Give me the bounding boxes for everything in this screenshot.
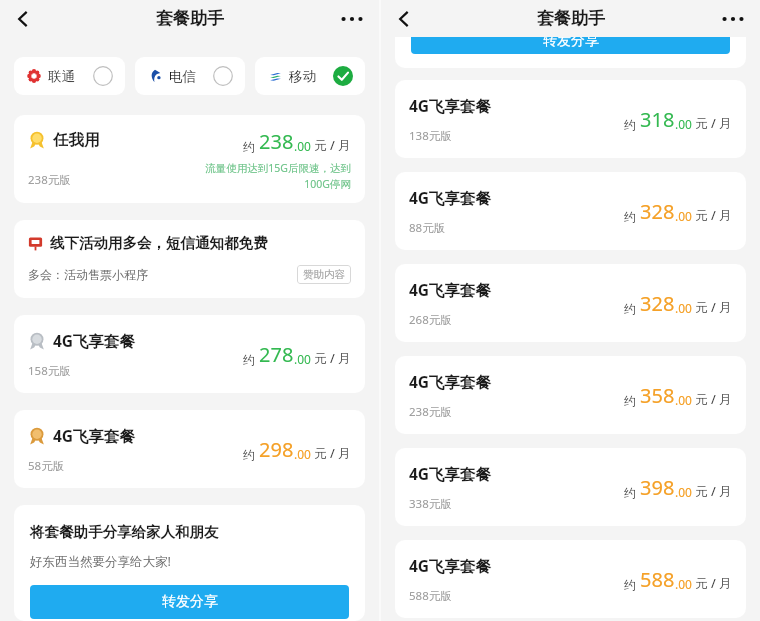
staticText: 358: [640, 382, 675, 409]
staticText: 流量使用达到15G后限速，达到100G停网: [193, 161, 351, 191]
staticText: 4G飞享套餐: [409, 555, 492, 576]
staticText: 任我用: [53, 130, 100, 150]
staticText: .00: [675, 484, 692, 500]
button[interactable]: 移动: [255, 57, 365, 95]
button[interactable]: 线下活动用多会，短信通知都免费: [14, 220, 365, 298]
button[interactable]: More options: [716, 2, 750, 36]
staticText: 约: [624, 116, 640, 132]
staticText: 套餐助手: [156, 8, 224, 29]
staticText: 88元版: [409, 220, 446, 236]
staticText: 约: [243, 138, 259, 154]
staticText: 328: [640, 198, 675, 225]
staticText: 移动: [289, 68, 316, 85]
button[interactable]: Back: [8, 4, 38, 34]
staticText: 好东西当然要分享给大家!: [30, 553, 171, 570]
staticText: 约: [624, 576, 640, 592]
staticText: 元 / 月: [692, 299, 732, 316]
staticText: 元 / 月: [692, 483, 732, 500]
staticText: 约: [243, 351, 259, 367]
staticText: 电信: [169, 68, 196, 85]
staticText: 238元版: [409, 404, 452, 420]
staticText: 4G飞享套餐: [409, 463, 492, 484]
staticText: .00: [675, 208, 692, 224]
button[interactable]: 4G飞享套餐: [395, 356, 746, 434]
staticText: 4G飞享套餐: [53, 330, 136, 351]
staticText: 赞助内容: [303, 268, 345, 281]
staticText: .00: [675, 300, 692, 316]
staticText: 元 / 月: [311, 137, 351, 154]
staticText: 元 / 月: [311, 445, 351, 462]
button[interactable]: More options: [335, 2, 369, 36]
button[interactable]: 赞助内容: [297, 265, 351, 284]
button[interactable]: 转发分享: [411, 37, 730, 54]
staticText: 元 / 月: [692, 575, 732, 592]
staticText: 298: [259, 436, 294, 463]
button[interactable]: 任我用: [14, 115, 365, 203]
staticText: .00: [675, 116, 692, 132]
button[interactable]: 4G飞享套餐: [395, 80, 746, 158]
staticText: 268元版: [409, 312, 452, 328]
staticText: 4G飞享套餐: [409, 95, 492, 116]
button[interactable]: 4G飞享套餐: [14, 315, 365, 393]
staticText: 588元版: [409, 588, 452, 604]
button[interactable]: 4G飞享套餐: [395, 540, 746, 618]
button[interactable]: 4G飞享套餐: [14, 410, 365, 488]
staticText: 328: [640, 290, 675, 317]
staticText: 338元版: [409, 496, 452, 512]
staticText: 4G飞享套餐: [409, 279, 492, 300]
staticText: 将套餐助手分享给家人和朋友: [30, 523, 219, 541]
staticText: 元 / 月: [692, 115, 732, 132]
staticText: 约: [624, 208, 640, 224]
button[interactable]: 联通: [14, 57, 125, 95]
staticText: 约: [624, 300, 640, 316]
staticText: 套餐助手: [537, 8, 605, 29]
button[interactable]: 4G飞享套餐: [395, 264, 746, 342]
staticText: 约: [624, 484, 640, 500]
staticText: .00: [294, 351, 311, 367]
staticText: 元 / 月: [692, 391, 732, 408]
staticText: .00: [294, 446, 311, 462]
staticText: 约: [243, 446, 259, 462]
staticText: 4G飞享套餐: [53, 425, 136, 446]
staticText: 4G飞享套餐: [409, 371, 492, 392]
staticText: 318: [640, 106, 675, 133]
staticText: 4G飞享套餐: [409, 187, 492, 208]
staticText: 398: [640, 474, 675, 501]
staticText: .00: [675, 576, 692, 592]
staticText: 158元版: [28, 363, 71, 379]
button[interactable]: 电信: [135, 57, 245, 95]
staticText: 238: [259, 128, 294, 155]
staticText: 元 / 月: [692, 207, 732, 224]
button[interactable]: 转发分享: [30, 585, 349, 619]
staticText: 转发分享: [543, 37, 599, 50]
button[interactable]: 4G飞享套餐: [395, 172, 746, 250]
staticText: 联通: [48, 68, 75, 85]
staticText: .00: [675, 392, 692, 408]
staticText: 转发分享: [162, 593, 218, 611]
staticText: .00: [294, 138, 311, 154]
staticText: 238元版: [28, 172, 71, 188]
staticText: 58元版: [28, 458, 65, 474]
button[interactable]: 4G飞享套餐: [395, 448, 746, 526]
button[interactable]: Back: [389, 4, 419, 34]
staticText: 138元版: [409, 128, 452, 144]
staticText: 元 / 月: [311, 350, 351, 367]
staticText: 多会：活动售票小程序: [28, 267, 148, 282]
staticText: 线下活动用多会，短信通知都免费: [50, 234, 268, 252]
staticText: 278: [259, 341, 294, 368]
staticText: 588: [640, 566, 675, 593]
staticText: 约: [624, 392, 640, 408]
